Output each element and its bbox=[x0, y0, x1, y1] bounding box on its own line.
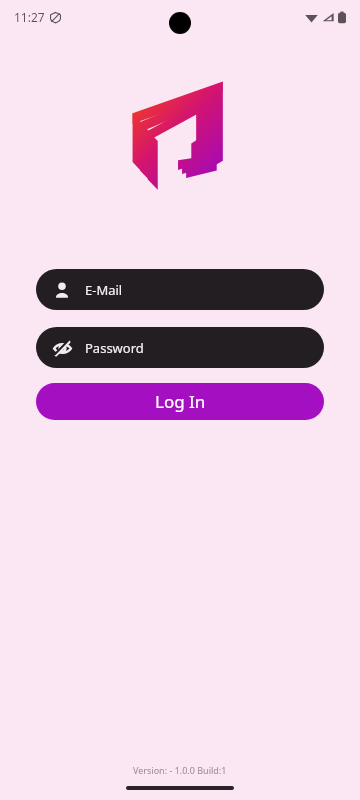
staticText: 11:27 bbox=[14, 9, 45, 25]
other: Show password bbox=[52, 338, 72, 358]
button[interactable]: Email bbox=[36, 269, 324, 310]
staticText: E-Mail bbox=[85, 281, 123, 299]
other: Email bbox=[52, 280, 72, 300]
staticText: Version: - 1.0.0 Build:1 bbox=[133, 764, 227, 776]
button[interactable]: Show password bbox=[36, 327, 324, 368]
button[interactable]: Log In bbox=[36, 383, 324, 420]
staticText: Log In bbox=[155, 390, 206, 413]
staticText: Password bbox=[85, 339, 144, 357]
